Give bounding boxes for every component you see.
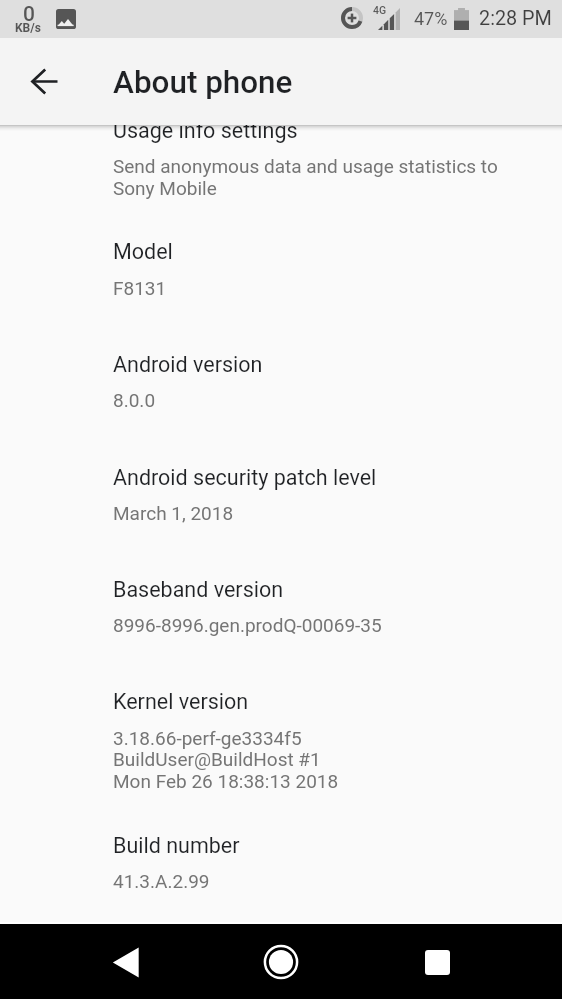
staticText: Baseband version xyxy=(113,577,284,602)
staticText: Sony Mobile xyxy=(113,177,217,199)
button[interactable]: Home xyxy=(253,938,309,986)
staticText: Mon Feb 26 18:38:13 2018 xyxy=(113,770,339,792)
staticText: 0 xyxy=(23,2,35,27)
button[interactable]: Navigate up xyxy=(20,57,68,105)
button[interactable]: Android version xyxy=(0,328,562,441)
button[interactable]: Android security patch level xyxy=(0,441,562,553)
button[interactable]: Usage info settings xyxy=(0,128,562,216)
button[interactable]: Baseband version xyxy=(0,553,562,666)
staticText: Android version xyxy=(113,352,263,377)
staticText: 8996-8996.gen.prodQ-00069-35 xyxy=(113,614,382,636)
staticText: Model xyxy=(113,239,173,264)
staticText: Usage info settings xyxy=(113,118,298,143)
button[interactable]: Model xyxy=(0,216,562,328)
button[interactable]: Kernel version xyxy=(0,666,562,810)
staticText: 8.0.0 xyxy=(113,389,156,411)
staticText: 4G xyxy=(373,4,387,16)
staticText: KB/s xyxy=(15,21,41,35)
button[interactable]: Build number xyxy=(0,810,562,922)
staticText: 47% xyxy=(414,8,448,29)
staticText: 2:28 PM xyxy=(479,7,552,30)
staticText: 41.3.A.2.99 xyxy=(113,870,210,892)
button[interactable]: Recent apps xyxy=(409,938,465,986)
staticText: Build number xyxy=(113,833,240,858)
staticText: March 1, 2018 xyxy=(113,502,234,524)
staticText: BuildUser@BuildHost #1 xyxy=(113,748,321,770)
staticText: F8131 xyxy=(113,277,167,299)
staticText: Android security patch level xyxy=(113,465,377,490)
staticText: Kernel version xyxy=(113,689,249,714)
staticText: About phone xyxy=(113,64,293,101)
staticText: Send anonymous data and usage statistics… xyxy=(113,155,498,177)
staticText: 3.18.66-perf-ge3334f5 xyxy=(113,727,302,749)
button[interactable]: Back xyxy=(98,938,154,986)
